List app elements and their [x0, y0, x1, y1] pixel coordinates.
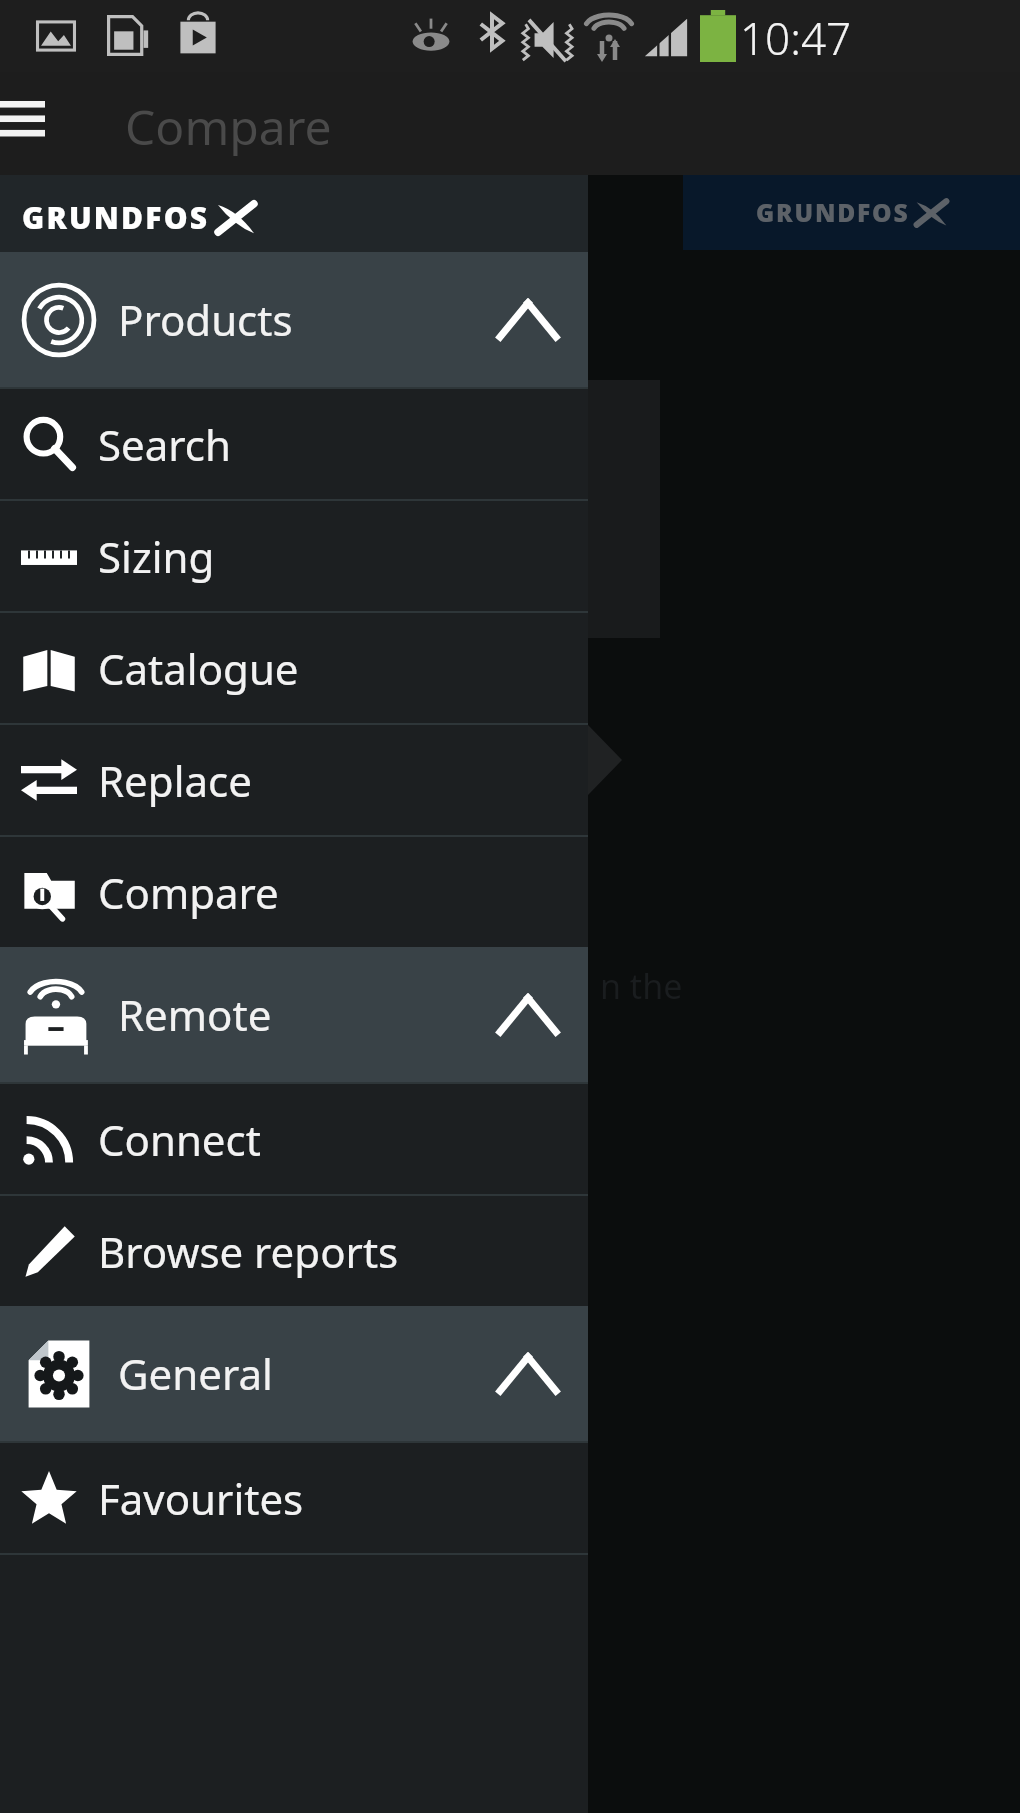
button[interactable]: Connect — [0, 1084, 588, 1194]
staticText: Connect — [98, 1111, 261, 1168]
staticText: Remote — [118, 986, 272, 1043]
staticText: n the — [600, 963, 683, 1009]
button[interactable]: Catalogue — [0, 613, 588, 723]
button[interactable]: Compare — [0, 837, 588, 947]
button[interactable]: Remote — [0, 947, 588, 1082]
staticText: Compare — [98, 864, 279, 921]
staticText: Catalogue — [98, 640, 299, 697]
button[interactable]: Open navigation drawer — [0, 72, 56, 175]
staticText: Browse reports — [98, 1223, 399, 1280]
staticText: Search — [98, 416, 231, 473]
button[interactable]: General — [0, 1306, 588, 1441]
staticText: Compare — [125, 94, 332, 159]
staticText: GRUNDFOS — [756, 196, 910, 230]
staticText: Products — [118, 291, 293, 348]
button[interactable]: Browse reports — [0, 1196, 588, 1306]
staticText: GRUNDFOS — [22, 197, 210, 238]
button[interactable]: Sizing — [0, 501, 588, 611]
button[interactable]: Replace — [0, 725, 588, 835]
button[interactable]: Search — [0, 389, 588, 499]
staticText: Favourites — [98, 1470, 304, 1527]
staticText: 10:47 — [740, 8, 852, 68]
button[interactable]: Products — [0, 252, 588, 387]
button[interactable]: Favourites — [0, 1443, 588, 1553]
staticText: Replace — [98, 752, 252, 809]
staticText: General — [118, 1345, 273, 1402]
staticText: Sizing — [98, 528, 215, 585]
